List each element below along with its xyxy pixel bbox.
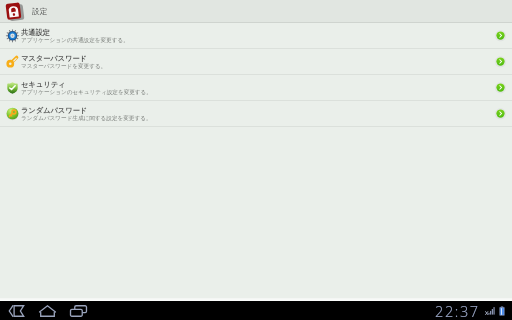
- staticText: アプリケーションの共通設定を変更する。: [21, 37, 129, 44]
- button[interactable]: マスターパスワード: [0, 49, 512, 74]
- button[interactable]: Recent apps: [67, 301, 90, 320]
- staticText: セキュリティ: [21, 80, 66, 89]
- staticText: 22:37: [435, 301, 480, 320]
- staticText: 設定: [32, 6, 48, 16]
- staticText: 共通設定: [21, 28, 50, 37]
- staticText: マスターパスワード: [21, 54, 87, 63]
- button[interactable]: セキュリティ: [0, 75, 512, 100]
- button[interactable]: ランダムパスワード: [0, 101, 512, 126]
- button[interactable]: Home: [36, 301, 59, 320]
- staticText: ランダムパスワード: [21, 106, 88, 115]
- button[interactable]: 共通設定: [0, 23, 512, 48]
- button[interactable]: Back: [5, 301, 28, 320]
- staticText: アプリケーションのセキュリティ設定を変更する。: [21, 89, 152, 96]
- staticText: ランダムパスワード生成に関する設定を変更する。: [21, 115, 152, 122]
- button[interactable]: 22:37: [433, 301, 509, 320]
- staticText: マスターパスワードを変更する。: [21, 63, 107, 70]
